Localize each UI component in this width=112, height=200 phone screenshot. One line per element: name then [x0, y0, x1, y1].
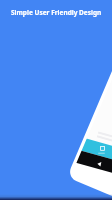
other: App preview on phone — [0, 0, 112, 200]
staticText: Simple User Friendly Design — [11, 8, 102, 17]
